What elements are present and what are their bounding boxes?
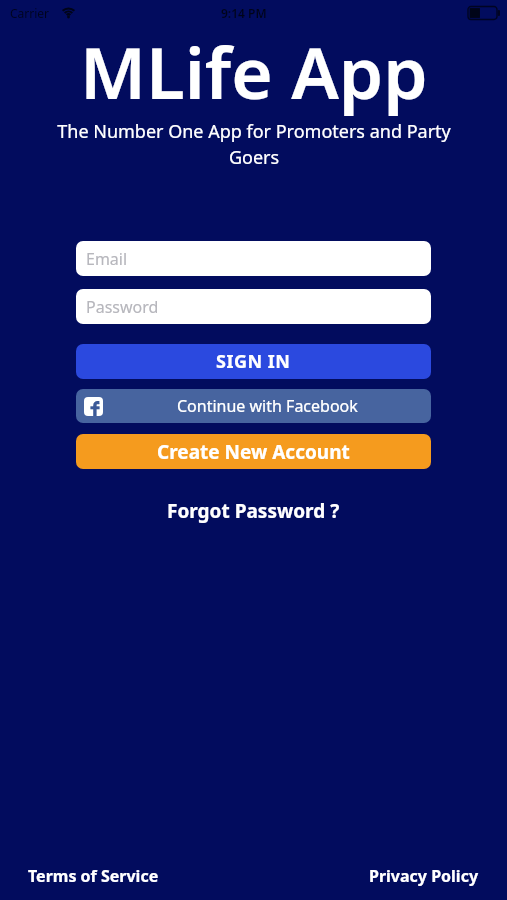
staticText: Create New Account <box>157 439 350 465</box>
button[interactable]: Password <box>76 289 431 324</box>
button[interactable]: SIGN IN <box>76 344 431 379</box>
button[interactable]: Forgot Password ? <box>167 495 340 526</box>
staticText: Carrier <box>10 5 50 21</box>
staticText: Forgot Password ? <box>167 498 340 524</box>
staticText: Email <box>86 248 128 270</box>
staticText: Password <box>86 296 159 318</box>
button[interactable]: Terms of Service <box>28 865 159 887</box>
staticText: Continue with Facebook <box>177 395 358 417</box>
staticText: SIGN IN <box>216 349 291 374</box>
button[interactable]: Continue with Facebook <box>76 389 431 423</box>
button[interactable]: Privacy Policy <box>369 865 479 887</box>
button[interactable]: Create New Account <box>76 434 431 469</box>
staticText: The Number One App for Promoters and Par… <box>44 119 464 170</box>
button[interactable]: Email <box>76 241 431 276</box>
staticText: MLife App <box>80 23 428 117</box>
staticText: 9:14 PM <box>221 5 267 21</box>
